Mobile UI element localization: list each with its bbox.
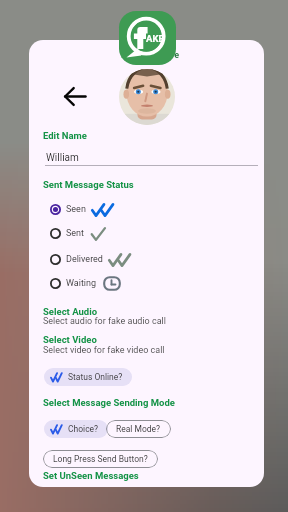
staticText: Sent Message Status bbox=[43, 179, 134, 190]
staticText: William bbox=[46, 152, 79, 164]
staticText: Real Mode? bbox=[116, 424, 161, 434]
staticText: Select Message Sending Mode bbox=[43, 397, 175, 408]
staticText: Choice? bbox=[68, 424, 99, 434]
button[interactable]: Real Mode? bbox=[106, 420, 171, 438]
staticText: Delivered bbox=[66, 254, 103, 265]
button[interactable]: Status Online? bbox=[44, 368, 132, 386]
staticText: Select Audio bbox=[43, 306, 98, 317]
staticText: AKE bbox=[146, 33, 164, 44]
button[interactable]: Waiting bbox=[50, 273, 121, 294]
staticText: Select video for fake video call bbox=[43, 345, 165, 356]
staticText: Seen bbox=[66, 204, 86, 215]
staticText: Waiting bbox=[66, 278, 97, 289]
staticText: Set UnSeen Messages bbox=[43, 470, 139, 481]
staticText: Long Press Send Button? bbox=[53, 454, 148, 464]
staticText: Sent bbox=[66, 228, 85, 239]
button[interactable]: Sent bbox=[50, 223, 106, 244]
button[interactable]: Back bbox=[61, 82, 89, 110]
button[interactable]: Seen bbox=[50, 199, 117, 220]
staticText: Select audio for fake audio call bbox=[43, 316, 166, 327]
button[interactable]: Choice? bbox=[44, 420, 108, 438]
staticText: Status Online? bbox=[68, 372, 123, 382]
staticText: Profile Picture bbox=[121, 50, 180, 61]
button[interactable]: Long Press Send Button? bbox=[43, 450, 158, 468]
button[interactable]: Profile picture bbox=[119, 69, 175, 125]
staticText: Select Video bbox=[43, 334, 97, 345]
button[interactable]: Delivered bbox=[50, 249, 134, 270]
staticText: Edit Name bbox=[43, 130, 87, 141]
